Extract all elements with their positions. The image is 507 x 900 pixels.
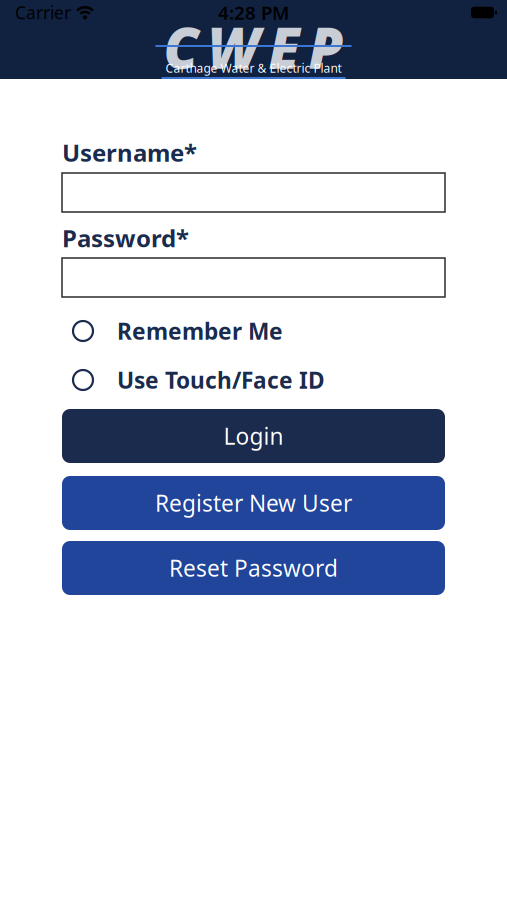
button[interactable]: Password <box>62 258 445 297</box>
staticText: Use Touch/Face ID <box>117 365 325 395</box>
staticText: Register New User <box>155 488 352 518</box>
button[interactable]: Use Touch/Face ID <box>62 366 325 393</box>
staticText: Login <box>223 421 283 451</box>
staticText: C <box>163 10 198 84</box>
staticText: Username* <box>62 137 197 168</box>
button[interactable]: Remember Me <box>62 317 283 344</box>
staticText: Remember Me <box>117 316 283 346</box>
staticText: Carthage Water & Electric Plant <box>165 60 341 76</box>
staticText: Carrier <box>15 1 71 24</box>
button[interactable]: Login <box>62 409 445 463</box>
staticText: E <box>268 10 299 84</box>
button[interactable]: Reset Password <box>62 541 445 595</box>
button[interactable]: Username <box>62 173 445 212</box>
staticText: W <box>207 10 259 84</box>
staticText: P <box>308 10 343 84</box>
button[interactable]: Register New User <box>62 476 445 530</box>
staticText: Password* <box>62 222 189 254</box>
staticText: Reset Password <box>169 553 338 583</box>
staticText: 4:28 PM <box>218 0 289 25</box>
